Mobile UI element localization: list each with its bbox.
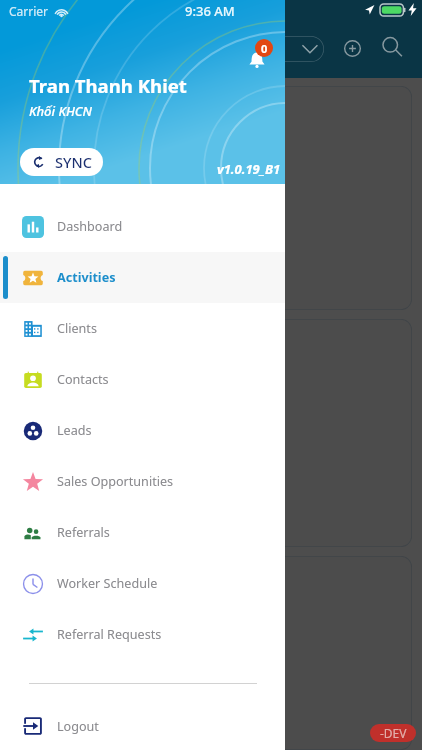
button[interactable]: Contacts: [0, 354, 285, 405]
button[interactable]: Dashboard: [0, 201, 285, 252]
button[interactable]: Sales Opportunities: [0, 456, 285, 507]
button[interactable]: [10, 556, 412, 750]
staticText: v1.0.19_B1: [217, 160, 281, 178]
staticText: -DEV: [380, 725, 407, 741]
button[interactable]: [10, 319, 412, 547]
staticText: Activities: [57, 269, 116, 286]
button[interactable]: Referrals: [0, 507, 285, 558]
button[interactable]: Logout: [0, 702, 285, 750]
button[interactable]: Leads: [0, 405, 285, 456]
button[interactable]: Filter: [250, 36, 324, 62]
button[interactable]: Notifications: [244, 37, 278, 71]
staticText: Leads: [57, 422, 92, 439]
staticText: Khối KHCN: [29, 102, 92, 120]
button[interactable]: -DEV: [370, 724, 416, 742]
button[interactable]: Add: [334, 30, 370, 66]
button[interactable]: Activities: [0, 252, 285, 303]
staticText: Dashboard: [57, 218, 123, 235]
button[interactable]: SYNC: [20, 148, 103, 176]
button[interactable]: Search: [374, 29, 410, 65]
button[interactable]: [10, 86, 412, 310]
staticText: Clients: [57, 320, 97, 337]
staticText: 9:36 AM: [185, 2, 235, 20]
staticText: Worker Schedule: [57, 575, 158, 592]
staticText: Contacts: [57, 371, 109, 388]
staticText: 0: [261, 41, 268, 56]
staticText: Referral Requests: [57, 626, 162, 643]
staticText: Tran Thanh Khiet: [29, 73, 187, 98]
staticText: Sales Opportunities: [57, 473, 174, 490]
staticText: Carrier: [9, 3, 49, 19]
button[interactable]: Referral Requests: [0, 609, 285, 660]
staticText: Logout: [57, 718, 99, 735]
staticText: SYNC: [55, 152, 92, 172]
button[interactable]: Clients: [0, 303, 285, 354]
staticText: Referrals: [57, 524, 110, 541]
button[interactable]: Worker Schedule: [0, 558, 285, 609]
